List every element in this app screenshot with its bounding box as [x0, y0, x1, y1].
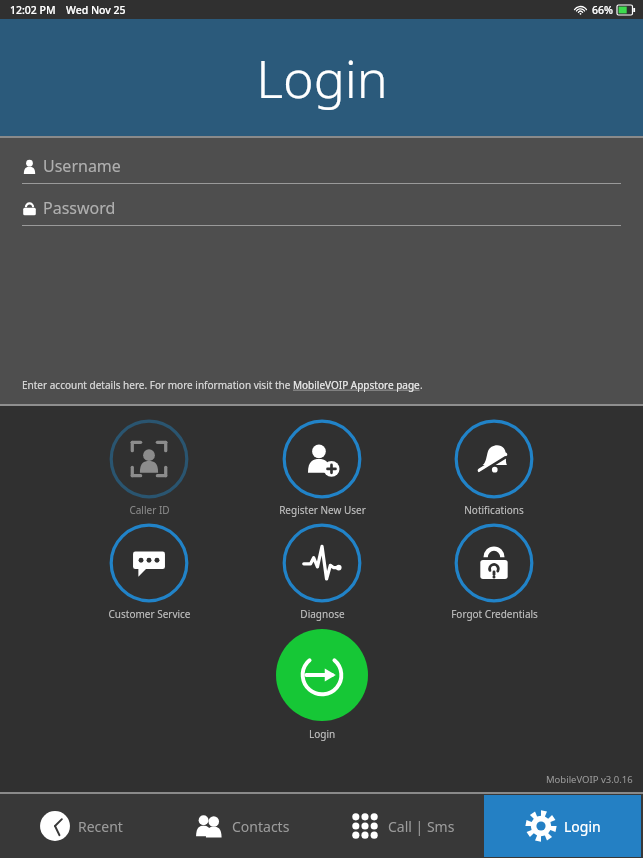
button[interactable]: Register New User — [268, 419, 376, 517]
staticText: Password — [43, 197, 116, 219]
staticText: Register New User — [279, 503, 366, 517]
staticText: Enter account details here. For more inf… — [22, 378, 293, 392]
staticText: Contacts — [232, 817, 290, 836]
staticText: Login — [256, 42, 388, 113]
staticText: 66% — [592, 3, 613, 17]
staticText: Customer Service — [108, 607, 191, 621]
staticText: 12:02 PM — [10, 3, 56, 17]
button[interactable]: Contacts — [160, 794, 321, 858]
staticText: Diagnose — [300, 607, 345, 621]
button[interactable]: Username — [22, 153, 621, 184]
button[interactable]: Recent — [0, 794, 160, 858]
button[interactable]: Notifications — [440, 419, 548, 517]
button[interactable]: Forgot Credentials — [440, 523, 548, 621]
staticText: Recent — [78, 817, 123, 836]
button[interactable]: Caller ID — [95, 419, 203, 517]
button[interactable]: Login — [276, 629, 368, 741]
staticText: Wed Nov 25 — [66, 3, 126, 17]
staticText: Login — [309, 727, 336, 741]
staticText: MobileVOIP v3.0.16 — [546, 773, 633, 786]
button[interactable]: Diagnose — [268, 523, 376, 621]
button[interactable]: MobileVOIP Appstore page — [293, 378, 420, 392]
staticText: Call | Sms — [388, 817, 455, 836]
button[interactable]: Login — [484, 795, 641, 857]
staticText: . — [420, 378, 423, 392]
staticText: Notifications — [464, 503, 524, 517]
button[interactable]: Call | Sms — [321, 794, 482, 858]
staticText: Forgot Credentials — [451, 607, 538, 621]
button[interactable]: Password — [22, 195, 621, 226]
staticText: Login — [564, 817, 601, 836]
staticText: Username — [43, 155, 121, 177]
button[interactable]: Customer Service — [95, 523, 203, 621]
staticText: Caller ID — [129, 503, 170, 517]
